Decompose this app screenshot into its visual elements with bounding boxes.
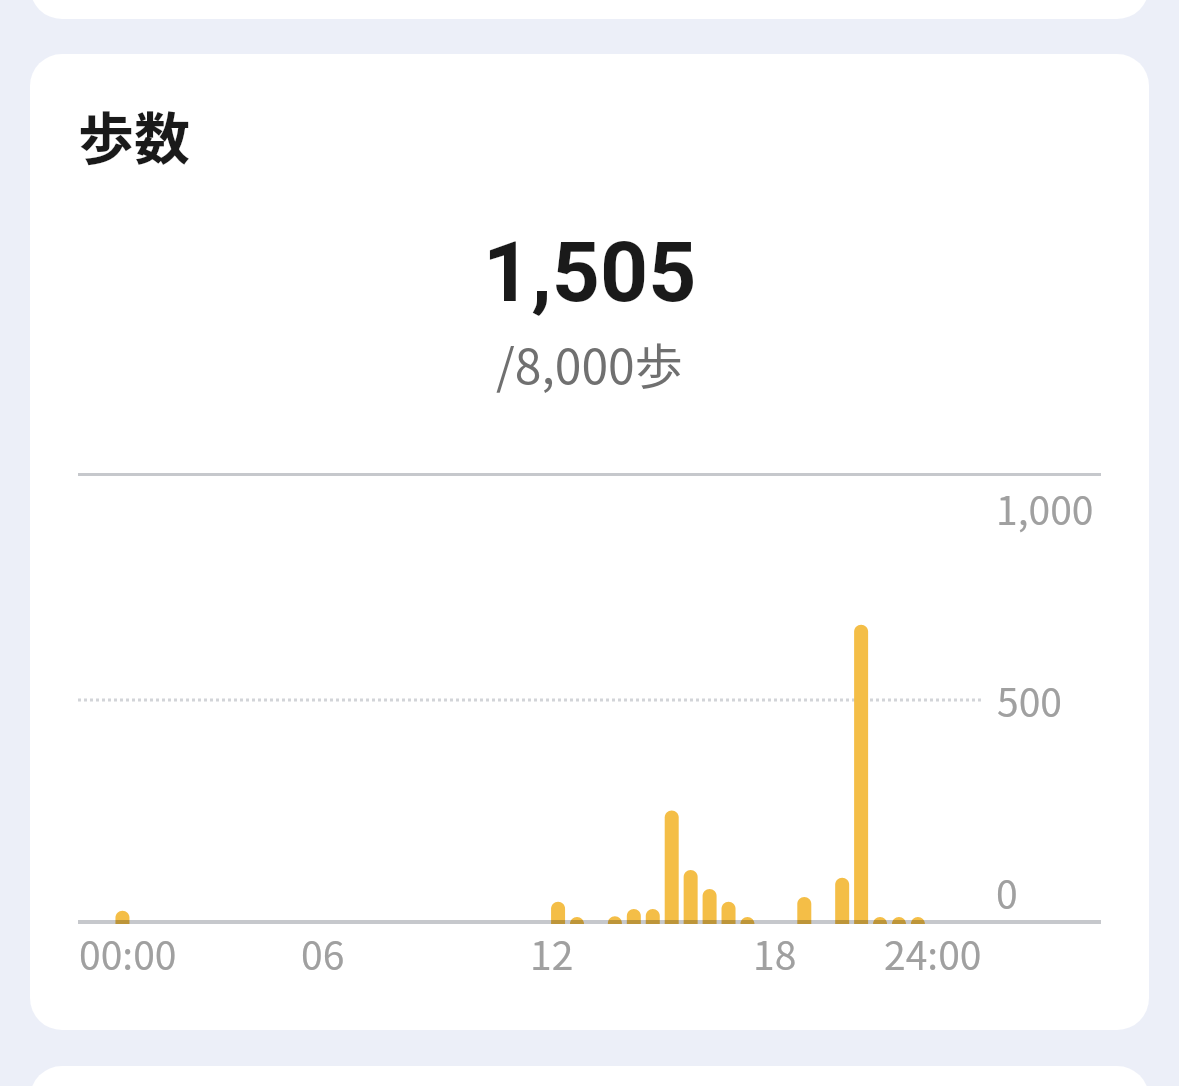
staticText: 歩数: [78, 94, 190, 175]
staticText: 1,505: [483, 223, 697, 321]
staticText: 00:00: [79, 925, 177, 981]
staticText: 1,000: [996, 480, 1094, 536]
staticText: 06: [301, 925, 345, 981]
staticText: 24:00: [884, 925, 982, 981]
staticText: /8,000歩: [496, 328, 683, 398]
staticText: 0: [996, 864, 1018, 920]
staticText: 12: [530, 925, 574, 981]
staticText: 18: [753, 925, 797, 981]
staticText: 500: [997, 672, 1062, 728]
button[interactable]: 歩数: [30, 54, 1149, 1030]
